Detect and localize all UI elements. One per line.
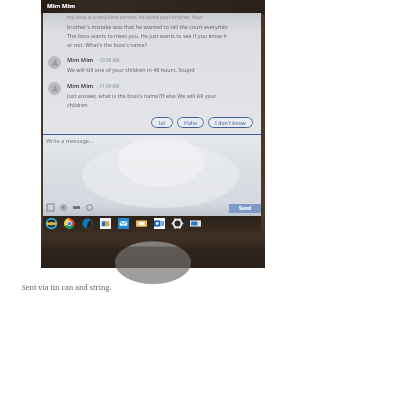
- button[interactable]: Emoji: [86, 204, 93, 211]
- button[interactable]: lol: [151, 117, 173, 128]
- staticText: Mim Mim: [67, 56, 94, 64]
- button[interactable]: Settings: [172, 218, 183, 229]
- button[interactable]: Send: [229, 204, 261, 213]
- staticText: Mim Mim: [67, 82, 94, 90]
- button[interactable]: Outlook: [154, 218, 165, 229]
- staticText: Mim Mim: [47, 2, 76, 10]
- button[interactable]: Sticker: [60, 204, 67, 211]
- button[interactable]: Add photo: [47, 204, 54, 211]
- staticText: We will kill one of your children in 48 …: [67, 66, 195, 73]
- button[interactable]: Remote Desktop: [190, 218, 201, 229]
- staticText: children: [67, 101, 88, 108]
- button[interactable]: Store: [100, 218, 111, 229]
- staticText: or not. What's the boss's name?: [67, 41, 148, 48]
- staticText: Haha: [184, 119, 198, 126]
- button[interactable]: Chrome: [64, 218, 75, 229]
- button[interactable]: Edge: [82, 218, 93, 229]
- staticText: Write a message...: [46, 137, 94, 144]
- staticText: The boss wants to meet you. He just want…: [67, 32, 227, 39]
- staticText: lol: [159, 119, 165, 126]
- button[interactable]: Mail: [118, 218, 129, 229]
- button[interactable]: Internet Explorer: [46, 218, 57, 229]
- staticText: I don't know: [215, 119, 246, 126]
- staticText: · 10:58 AM: [97, 57, 120, 63]
- staticText: brother's mistake was that he wanted to …: [67, 23, 228, 30]
- staticText: Sent via tin can and string.: [22, 283, 111, 293]
- button[interactable]: I don't know: [208, 117, 253, 128]
- staticText: Send: [239, 205, 252, 212]
- button[interactable]: GIF: [73, 204, 80, 211]
- staticText: Just answer, what is the boss's name?If …: [67, 92, 217, 99]
- button[interactable]: Mim Mim: [41, 0, 265, 268]
- staticText: my boss is a very kind person, he loved …: [67, 14, 203, 21]
- staticText: · 11:04 AM: [97, 83, 120, 89]
- button[interactable]: File Explorer: [136, 218, 147, 229]
- button[interactable]: Haha: [177, 117, 204, 128]
